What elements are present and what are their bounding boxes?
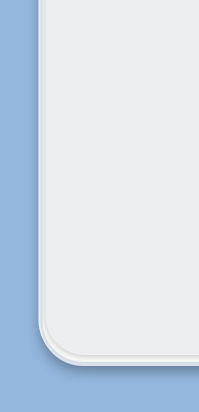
button[interactable]: Dismiss (0, 0, 199, 412)
